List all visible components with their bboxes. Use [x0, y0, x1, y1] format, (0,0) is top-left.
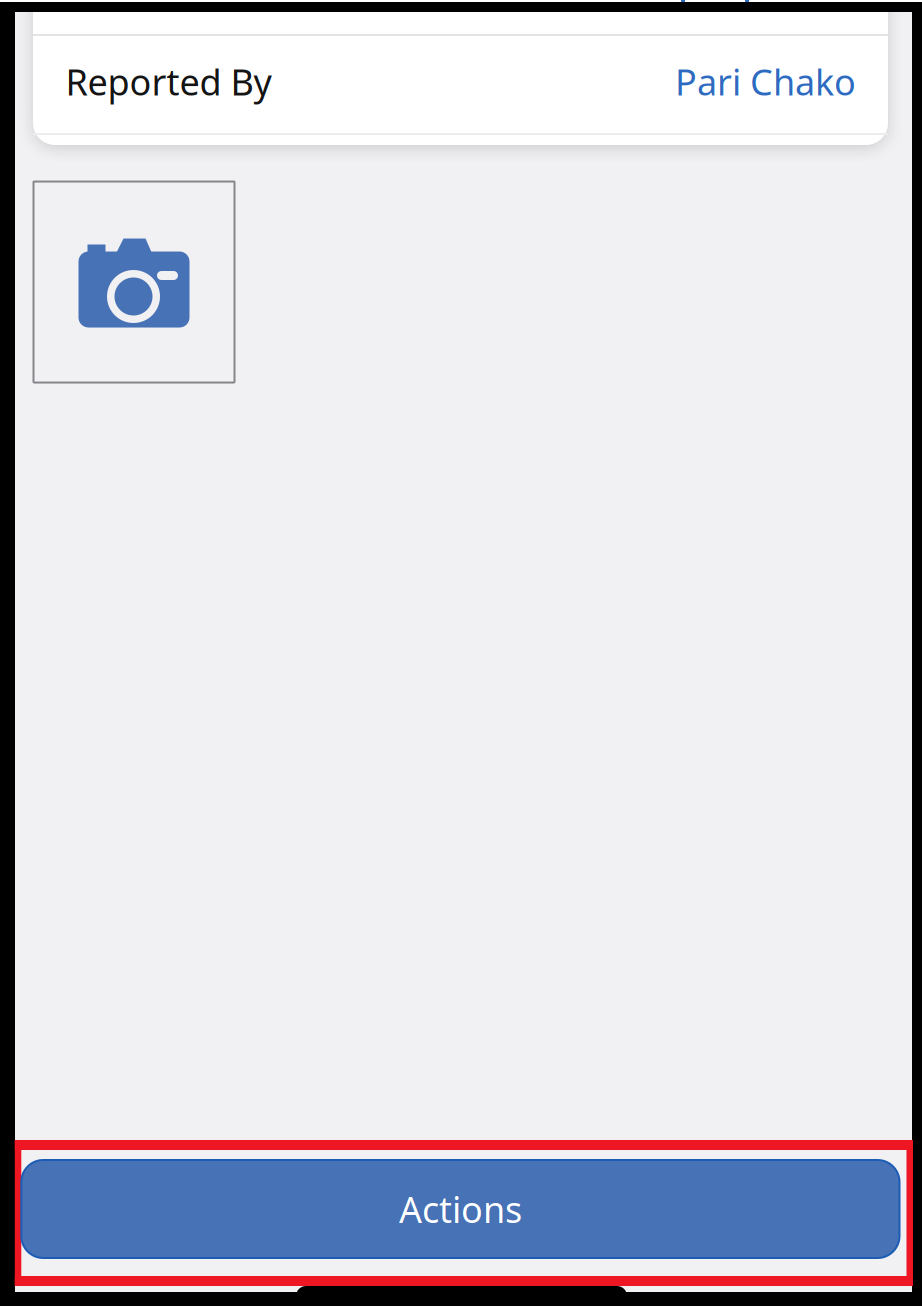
button[interactable]: Actions — [21, 1160, 899, 1258]
staticText: Reported By — [65, 58, 271, 105]
staticText: Pari Chako — [675, 58, 856, 105]
button[interactable]: Add photo — [33, 181, 234, 382]
staticText: Actions — [399, 1185, 522, 1233]
button[interactable]: Reported By — [33, 33, 888, 130]
